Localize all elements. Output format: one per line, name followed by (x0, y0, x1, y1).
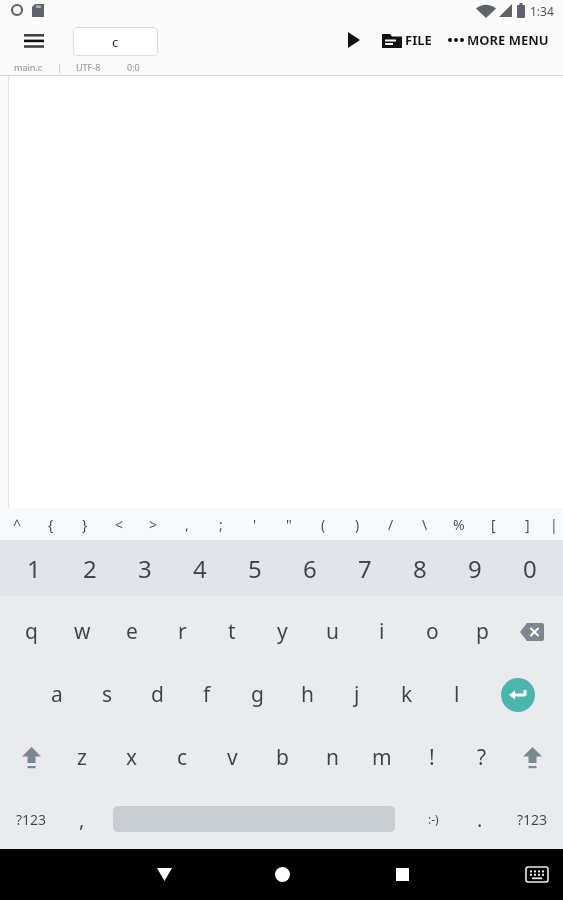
button[interactable]: | (544, 508, 563, 540)
button[interactable]: ?123 (0, 789, 62, 849)
button[interactable]: } (68, 508, 102, 540)
button[interactable]: 5 (227, 540, 282, 596)
button[interactable]: u (307, 600, 357, 663)
staticText: :-) (428, 811, 439, 827)
button[interactable]: MORE MENU (448, 24, 549, 56)
button[interactable]: 8 (392, 540, 447, 596)
button[interactable]: 0 (502, 540, 557, 596)
button[interactable]: ' (238, 508, 272, 540)
staticText: ? (477, 743, 487, 772)
button[interactable]: , (62, 789, 102, 849)
button[interactable]: % (442, 508, 476, 540)
button[interactable]: 6 (282, 540, 337, 596)
button[interactable]: :-) (410, 789, 456, 849)
button[interactable]: m (357, 726, 407, 789)
button[interactable]: p (457, 600, 507, 663)
button[interactable]: v (207, 726, 257, 789)
button[interactable]: b (257, 726, 307, 789)
button[interactable] (514, 849, 560, 900)
staticText: FILE (405, 31, 432, 49)
staticText: j (354, 680, 360, 709)
button[interactable]: e (107, 600, 157, 663)
staticText: a (51, 680, 63, 709)
button[interactable]: " (272, 508, 306, 540)
button[interactable]: h (282, 663, 332, 726)
button[interactable]: 1 (6, 540, 62, 596)
button[interactable] (258, 849, 306, 900)
staticText: 4 (193, 552, 207, 585)
button[interactable]: a (32, 663, 82, 726)
button[interactable] (507, 726, 557, 789)
staticText: w (74, 617, 91, 646)
button[interactable]: ^ (0, 508, 34, 540)
button[interactable]: > (136, 508, 170, 540)
button[interactable]: , (170, 508, 204, 540)
button[interactable] (140, 849, 188, 900)
button[interactable]: FILE (382, 24, 432, 56)
staticText: t (228, 617, 236, 646)
button[interactable]: ) (340, 508, 374, 540)
staticText: % (453, 515, 465, 534)
button[interactable]: f (182, 663, 232, 726)
staticText: ( (321, 515, 326, 534)
staticText: 5 (248, 552, 262, 585)
staticText: f (203, 680, 211, 709)
button[interactable]: . (462, 789, 498, 849)
button[interactable]: 7 (337, 540, 392, 596)
staticText: ) (355, 515, 360, 534)
button[interactable]: ? (457, 726, 507, 789)
staticText: b (276, 743, 289, 772)
staticText: \ (422, 515, 428, 534)
button[interactable]: i (357, 600, 407, 663)
staticText: ! (429, 743, 435, 772)
button[interactable]: k (382, 663, 432, 726)
button[interactable]: 9 (447, 540, 502, 596)
button[interactable]: t (207, 600, 257, 663)
button[interactable]: c (157, 726, 207, 789)
staticText: MORE MENU (467, 31, 549, 49)
button[interactable]: { (34, 508, 68, 540)
button[interactable]: ! (407, 726, 457, 789)
staticText: 1 (27, 552, 41, 585)
button[interactable]: w (57, 600, 107, 663)
button[interactable]: ( (306, 508, 340, 540)
button[interactable]: n (307, 726, 357, 789)
button[interactable]: ?123 (501, 789, 563, 849)
button[interactable]: q (6, 600, 57, 663)
button[interactable]: z (57, 726, 107, 789)
button[interactable]: 2 (62, 540, 117, 596)
button[interactable]: < (102, 508, 136, 540)
button[interactable] (16, 26, 52, 56)
staticText: ' (253, 515, 257, 534)
staticText: c (177, 743, 188, 772)
staticText: q (25, 617, 38, 646)
button[interactable]: r (157, 600, 207, 663)
button[interactable] (378, 849, 426, 900)
staticText: , (79, 806, 85, 833)
button[interactable] (507, 600, 557, 663)
button[interactable]: o (407, 600, 457, 663)
staticText: 0 (523, 552, 537, 585)
button[interactable] (6, 726, 57, 789)
button[interactable]: ] (510, 508, 544, 540)
staticText: u (326, 617, 339, 646)
button[interactable]: [ (476, 508, 510, 540)
button[interactable]: j (332, 663, 382, 726)
button[interactable]: ; (204, 508, 238, 540)
button[interactable]: y (257, 600, 307, 663)
button[interactable] (340, 24, 368, 56)
button[interactable] (501, 678, 535, 712)
button[interactable]: d (132, 663, 182, 726)
button[interactable]: \ (408, 508, 442, 540)
button[interactable]: 3 (117, 540, 172, 596)
button[interactable]: x (107, 726, 157, 789)
button[interactable]: l (432, 663, 482, 726)
staticText: ?123 (517, 810, 548, 829)
button[interactable]: c (73, 27, 158, 56)
button[interactable]: 4 (172, 540, 227, 596)
button[interactable]: g (232, 663, 282, 726)
button[interactable]: / (374, 508, 408, 540)
staticText: d (151, 680, 164, 709)
button[interactable]: s (82, 663, 132, 726)
